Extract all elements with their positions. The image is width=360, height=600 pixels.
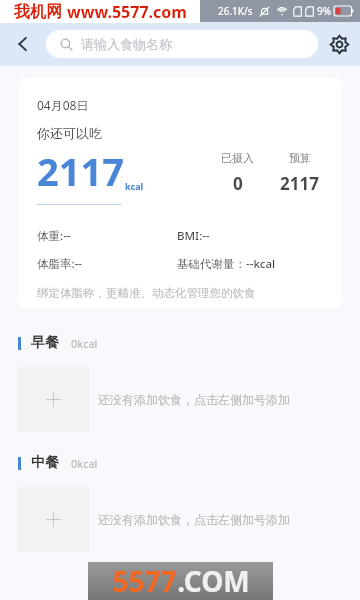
staticText: 中餐	[31, 454, 59, 472]
staticText: 2117	[280, 172, 319, 195]
staticText: BMI:--	[177, 228, 210, 244]
button[interactable]: 04月08日	[19, 78, 341, 308]
staticText: 请输入食物名称	[81, 36, 172, 52]
button[interactable]: Back	[0, 22, 46, 66]
staticText: 2117	[37, 145, 124, 197]
staticText: 已摄入	[221, 151, 254, 165]
staticText: 0kcal	[71, 336, 98, 351]
staticText: 0kcal	[71, 456, 98, 471]
button[interactable]: 中餐	[0, 454, 360, 472]
staticText: 26.1K/s	[218, 4, 253, 18]
staticText: 预算	[289, 151, 311, 165]
staticText: 体脂率:--	[37, 256, 177, 272]
staticText: 体重:--	[37, 228, 177, 244]
staticText: 早餐	[31, 334, 59, 352]
button[interactable]: Add food	[17, 487, 90, 552]
staticText: 基础代谢量：--kcal	[177, 256, 276, 272]
staticText: .COM	[177, 562, 250, 600]
staticText: 04月08日	[37, 97, 89, 113]
staticText: 还没有添加饮食，点击左侧加号添加	[98, 392, 290, 407]
staticText: kcal	[125, 180, 144, 192]
staticText: 我机网	[14, 2, 62, 22]
button[interactable]: 请输入食物名称	[46, 30, 318, 58]
button[interactable]: 早餐	[0, 334, 360, 352]
staticText: 5577	[112, 562, 177, 600]
staticText: 9%	[317, 4, 332, 18]
button[interactable]: Settings	[318, 22, 360, 66]
staticText: www.5577.com	[67, 1, 187, 23]
staticText: 绑定体脂称，更精准、动态化管理您的饮食	[37, 286, 256, 300]
button[interactable]: Add food	[17, 367, 90, 432]
staticText: 你还可以吃	[37, 125, 102, 141]
staticText: 还没有添加饮食，点击左侧加号添加	[98, 512, 290, 527]
staticText: 0	[233, 172, 243, 195]
